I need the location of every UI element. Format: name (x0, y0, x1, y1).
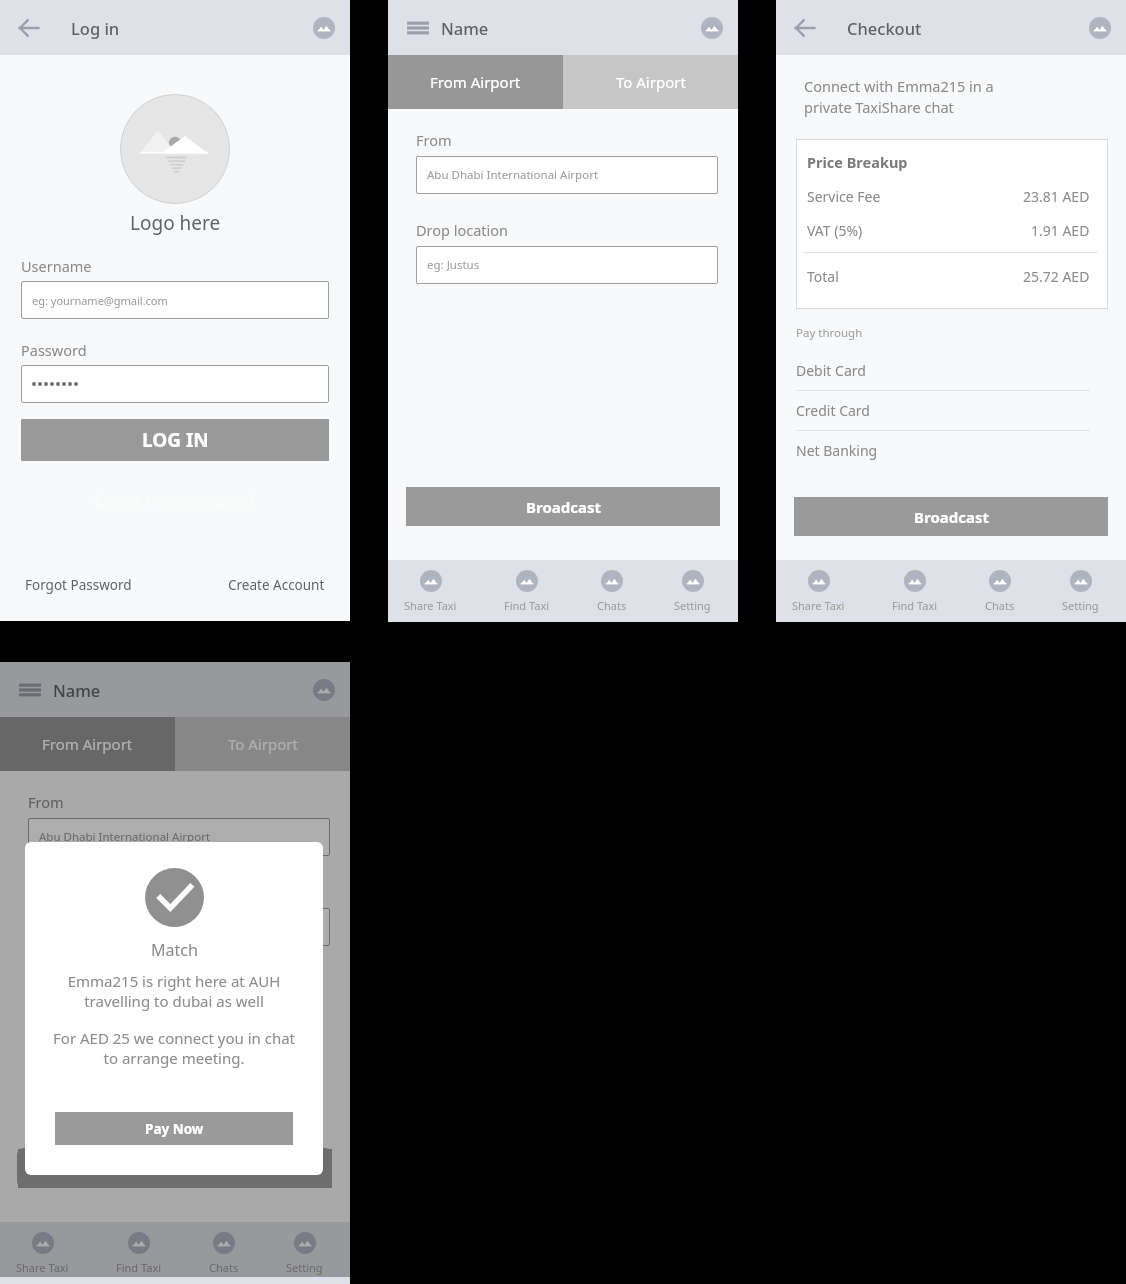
button[interactable]: Abu Dhabi International Airport (28, 818, 330, 856)
button[interactable]: Chats (595, 560, 629, 622)
button[interactable]: Profile (313, 17, 335, 39)
button[interactable]: Profile (1089, 17, 1111, 39)
button[interactable]: eg: Justus (28, 908, 330, 946)
button[interactable]: Setting (284, 1222, 325, 1284)
button[interactable]: Credit Card (796, 401, 1108, 441)
staticText: Create Account (228, 576, 325, 594)
staticText: Pay through (796, 325, 863, 341)
button[interactable]: Net Banking (796, 441, 1108, 470)
staticText: eg: yourname@gmail.com (32, 293, 168, 308)
button[interactable]: Share Taxi (790, 560, 847, 622)
button[interactable]: Abu Dhabi International Airport (416, 156, 718, 194)
staticText: Price Breakup (807, 152, 908, 172)
staticText: Service Fee (807, 187, 881, 206)
staticText: Abu Dhabi International Airport (39, 829, 211, 845)
staticText: Share Taxi (16, 1260, 69, 1275)
staticText: Broadcast (526, 497, 601, 517)
staticText: Share Taxi (792, 598, 845, 613)
staticText: Logo here (130, 210, 221, 236)
button[interactable]: Broadcast (794, 497, 1108, 536)
button[interactable] (21, 365, 329, 403)
staticText: Match (151, 939, 198, 961)
staticText: Setting (674, 598, 711, 613)
staticText: Net Banking (796, 441, 878, 460)
staticText: From Airport (42, 734, 133, 754)
staticText: Find Taxi (116, 1260, 162, 1275)
staticText: Drop location (416, 220, 509, 240)
button[interactable]: Back (19, 15, 45, 41)
staticText: Setting (286, 1260, 323, 1275)
staticText: Find Taxi (892, 598, 938, 613)
button[interactable]: Back (795, 15, 821, 41)
staticText: Name (53, 679, 101, 701)
button[interactable]: Share Taxi (402, 560, 459, 622)
staticText: Broadcast (914, 507, 989, 527)
staticText: Checkout (847, 17, 922, 39)
button[interactable]: LOG IN (21, 419, 329, 461)
button[interactable]: Setting (672, 560, 713, 622)
staticText: From Airport (430, 72, 521, 92)
button[interactable]: Menu (407, 15, 433, 41)
staticText: Log in (71, 17, 120, 39)
button[interactable]: Forgot Password (25, 576, 132, 594)
staticText: Setting (1062, 598, 1099, 613)
button[interactable]: To Airport (175, 717, 350, 771)
staticText: Username (21, 256, 92, 276)
staticText: To Airport (228, 734, 298, 754)
staticText: Find Taxi (504, 598, 550, 613)
button[interactable]: Chats (207, 1222, 241, 1284)
staticText: Chats (985, 598, 1015, 613)
staticText: Abu Dhabi International Airport (427, 167, 599, 183)
button[interactable]: Profile (701, 17, 723, 39)
staticText: For AED 25 we connect you in chat to arr… (41, 1028, 307, 1068)
staticText: Total (807, 267, 839, 286)
staticText: From (416, 130, 452, 150)
button[interactable]: From Airport (388, 55, 563, 109)
staticText: 1.91 AED (1031, 221, 1090, 240)
button[interactable]: eg: Justus (416, 246, 718, 284)
button[interactable]: To Airport (563, 55, 738, 109)
button[interactable]: Find Taxi (114, 1222, 164, 1284)
button[interactable]: Pay Now (55, 1112, 293, 1145)
staticText: Debit Card (796, 361, 866, 380)
staticText: From (28, 792, 64, 812)
staticText: Share Taxi (404, 598, 457, 613)
staticText: 25.72 AED (1023, 267, 1090, 286)
staticText: Broadcast (138, 1159, 213, 1179)
button[interactable]: Profile (313, 679, 335, 701)
staticText: To Airport (616, 72, 686, 92)
button[interactable]: Broadcast (406, 487, 720, 526)
staticText: Emma215 is right here at AUH travelling … (41, 971, 307, 1011)
button[interactable]: Find Taxi (890, 560, 940, 622)
staticText: Connect with Emma215 in a private TaxiSh… (804, 76, 994, 117)
button[interactable]: Create Account (228, 576, 325, 594)
staticText: Credit Card (796, 401, 870, 420)
staticText: LOG IN (142, 427, 209, 453)
button[interactable]: Menu (19, 677, 45, 703)
button[interactable]: Broadcast (18, 1149, 332, 1188)
button[interactable]: From Airport (0, 717, 175, 771)
staticText: Chats (597, 598, 627, 613)
staticText: Name (441, 17, 489, 39)
button[interactable]: eg: yourname@gmail.com (21, 281, 329, 319)
button[interactable]: Share Taxi (14, 1222, 71, 1284)
staticText: Chats (209, 1260, 239, 1275)
button[interactable]: Chats (983, 560, 1017, 622)
staticText: Password (21, 340, 87, 360)
staticText: Forgot Password (25, 576, 132, 594)
button[interactable]: Debit Card (796, 361, 1108, 401)
button[interactable]: Find Taxi (502, 560, 552, 622)
staticText: VAT (5%) (807, 221, 863, 240)
staticText: 23.81 AED (1023, 187, 1090, 206)
staticText: Pay Now (145, 1120, 204, 1138)
staticText: eg: Justus (427, 257, 480, 273)
button[interactable]: Setting (1060, 560, 1101, 622)
